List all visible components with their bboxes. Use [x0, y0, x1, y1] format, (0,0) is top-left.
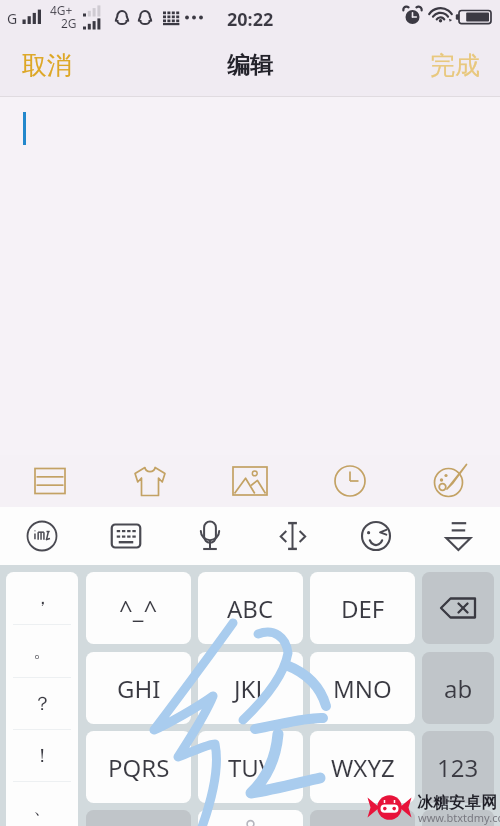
button[interactable]: DEF	[310, 572, 415, 644]
staticText: 、	[33, 796, 52, 820]
button[interactable]: Emoji	[334, 507, 417, 565]
staticText: 。	[33, 639, 52, 663]
staticText: MNO	[333, 672, 392, 705]
staticText: TUV	[228, 751, 274, 784]
button[interactable]: TUV	[198, 731, 303, 803]
button[interactable]: Period	[310, 810, 415, 826]
button[interactable]: ^_^	[86, 572, 191, 644]
button[interactable]: ab	[422, 652, 494, 724]
staticText: ^_^	[119, 592, 158, 625]
button[interactable]: Voice input	[168, 507, 251, 565]
button[interactable]: JKL	[198, 652, 303, 724]
staticText: 取消	[22, 50, 72, 81]
button[interactable]: WXYZ	[310, 731, 415, 803]
button[interactable]: Move cursor	[251, 507, 334, 565]
staticText: GHI	[117, 672, 161, 705]
button[interactable]: Space	[198, 810, 303, 826]
staticText: ？	[33, 692, 52, 716]
button[interactable]: Hide keyboard	[417, 507, 500, 565]
button[interactable]: ，	[6, 572, 78, 826]
button[interactable]: ABC	[198, 572, 303, 644]
staticText: 编辑	[227, 51, 273, 80]
staticText: ab	[444, 672, 473, 705]
staticText: ，	[33, 586, 52, 610]
staticText: ABC	[227, 592, 274, 625]
button[interactable]: Picture	[200, 455, 300, 507]
button[interactable]: PQRS	[86, 731, 191, 803]
staticText: 20:22	[227, 7, 274, 32]
button[interactable]: Reminder	[300, 455, 400, 507]
staticText: 4G+	[50, 2, 73, 18]
button[interactable]: Draw	[400, 455, 500, 507]
button[interactable]: 123	[422, 731, 494, 803]
staticText: 123	[437, 751, 479, 784]
staticText: G	[7, 9, 18, 28]
button[interactable]: Backspace	[422, 572, 494, 644]
button[interactable]: Format	[0, 455, 100, 507]
button[interactable]: MNO	[310, 652, 415, 724]
staticText: PQRS	[108, 751, 170, 784]
staticText: JKL	[234, 672, 268, 705]
staticText: DEF	[341, 592, 385, 625]
staticText: 完成	[430, 50, 480, 81]
button[interactable]: 完成	[418, 42, 492, 89]
button[interactable]: GHI	[86, 652, 191, 724]
button[interactable]: 取消	[10, 42, 84, 89]
staticText: 2G	[61, 15, 77, 31]
staticText: www.btxtdmy.com	[418, 810, 500, 825]
staticText: 冰糖安卓网	[417, 793, 497, 813]
button[interactable]: Style	[100, 455, 200, 507]
button[interactable]: Enter	[422, 810, 494, 826]
staticText: WXYZ	[331, 751, 395, 784]
staticText: ！	[33, 744, 52, 768]
button[interactable]: Input method	[0, 507, 84, 565]
button[interactable]: Keyboard layout	[84, 507, 168, 565]
